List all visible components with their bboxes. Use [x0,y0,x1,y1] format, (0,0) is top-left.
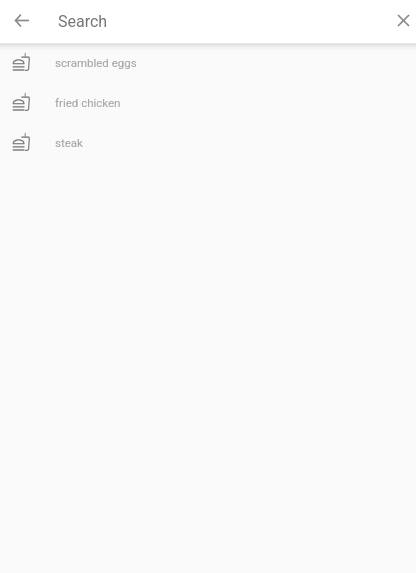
button[interactable]: Clear search [382,0,416,42]
button[interactable]: fried chicken [0,83,416,123]
button[interactable]: Back [0,0,43,43]
button[interactable]: steak [0,123,416,163]
staticText: fried chicken [55,96,121,109]
button[interactable]: scrambled eggs [0,43,416,83]
staticText: steak [55,136,83,149]
staticText: scrambled eggs [55,56,137,69]
staticText: Search [58,12,108,31]
